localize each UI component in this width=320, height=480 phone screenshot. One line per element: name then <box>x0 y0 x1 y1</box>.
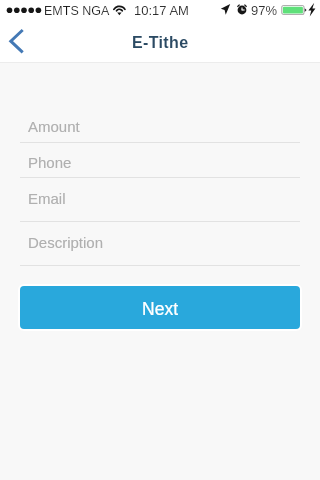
staticText: Next <box>142 299 178 319</box>
staticText: EMTS NGA <box>44 4 110 18</box>
button[interactable]: Next <box>20 286 300 329</box>
button[interactable] <box>0 143 320 177</box>
staticText: Description <box>28 234 104 251</box>
staticText: Amount <box>28 118 80 135</box>
button[interactable] <box>0 108 320 142</box>
staticText: E-Tithe <box>132 34 189 52</box>
staticText: Email <box>28 190 66 207</box>
button[interactable] <box>0 231 320 265</box>
button[interactable]: Back <box>0 24 34 58</box>
staticText: Phone <box>28 154 72 171</box>
button[interactable] <box>0 187 320 221</box>
staticText: 97% <box>251 3 278 18</box>
staticText: 10:17 AM <box>134 3 189 18</box>
